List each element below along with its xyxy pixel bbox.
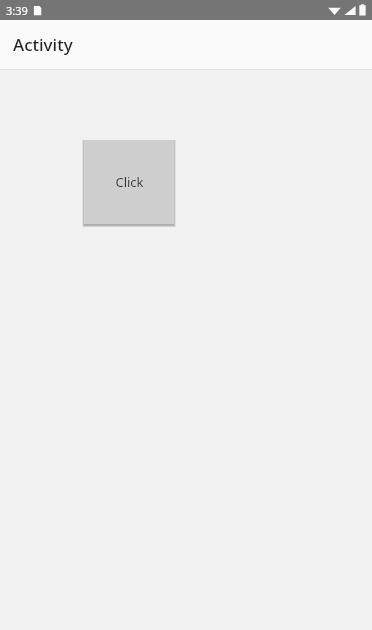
staticText: Activity xyxy=(13,33,73,56)
button[interactable]: Click xyxy=(84,140,174,224)
staticText: 3:39 xyxy=(6,3,28,18)
staticText: Click xyxy=(115,173,144,191)
